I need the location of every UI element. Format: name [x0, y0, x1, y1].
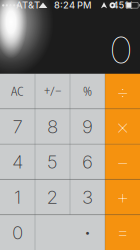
- button[interactable]: AC: [0, 73, 35, 109]
- button[interactable]: +/−: [35, 73, 70, 109]
- staticText: +: [116, 184, 129, 210]
- staticText: 9: [82, 115, 93, 138]
- button[interactable]: +: [105, 179, 140, 215]
- staticText: ·: [84, 220, 90, 244]
- staticText: =: [116, 219, 129, 245]
- button[interactable]: ÷: [105, 73, 140, 109]
- button[interactable]: %: [70, 73, 105, 109]
- staticText: AT&T: [16, 0, 40, 11]
- button[interactable]: 9: [70, 109, 105, 144]
- button[interactable]: 8: [35, 109, 70, 144]
- staticText: 3: [82, 186, 93, 208]
- button[interactable]: [0, 215, 70, 250]
- staticText: 6: [82, 150, 93, 173]
- staticText: +/−: [44, 82, 61, 100]
- staticText: 45%: [112, 0, 133, 11]
- staticText: −: [116, 149, 129, 175]
- staticText: %: [83, 82, 92, 100]
- button[interactable]: 2: [35, 179, 70, 215]
- staticText: 7: [12, 115, 22, 138]
- staticText: 8:24 PM: [54, 0, 92, 11]
- button[interactable]: ×: [105, 109, 140, 144]
- button[interactable]: 3: [70, 179, 105, 215]
- staticText: ÷: [116, 78, 129, 104]
- staticText: 5: [47, 150, 58, 173]
- staticText: 1: [14, 186, 21, 208]
- staticText: 8: [47, 115, 58, 138]
- button[interactable]: =: [105, 215, 140, 250]
- button[interactable]: 6: [70, 144, 105, 179]
- staticText: 0: [12, 221, 23, 244]
- staticText: 4: [12, 150, 23, 173]
- staticText: AC: [11, 82, 24, 100]
- staticText: ×: [116, 113, 129, 139]
- button[interactable]: ·: [70, 215, 105, 250]
- button[interactable]: −: [105, 144, 140, 179]
- staticText: 2: [46, 186, 58, 208]
- staticText: 0: [110, 27, 131, 73]
- button[interactable]: 7: [0, 109, 35, 144]
- button[interactable]: 5: [35, 144, 70, 179]
- button[interactable]: 1: [0, 179, 35, 215]
- button[interactable]: 4: [0, 144, 35, 179]
